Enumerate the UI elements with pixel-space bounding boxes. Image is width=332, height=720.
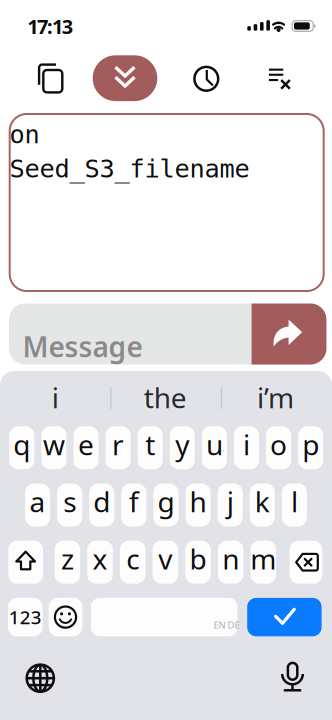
staticText: g: [157, 483, 174, 520]
button[interactable]: 123: [8, 598, 43, 636]
button[interactable]: f: [121, 483, 146, 526]
button[interactable]: z: [55, 541, 80, 584]
button[interactable]: s: [57, 483, 82, 526]
staticText: i: [243, 426, 250, 463]
staticText: x: [93, 540, 108, 577]
staticText: m: [250, 540, 276, 577]
button[interactable]: v: [152, 541, 178, 584]
button[interactable]: r: [106, 426, 131, 469]
button[interactable]: p: [298, 426, 323, 469]
staticText: EN DE: [213, 619, 239, 631]
staticText: r: [112, 426, 124, 463]
staticText: a: [30, 483, 46, 520]
staticText: l: [291, 483, 298, 520]
button[interactable]: [29, 56, 73, 100]
button[interactable]: EN DE: [91, 598, 237, 636]
staticText: n: [222, 540, 239, 577]
button[interactable]: [252, 303, 326, 364]
staticText: k: [255, 483, 270, 520]
button[interactable]: o: [266, 426, 291, 469]
button[interactable]: d: [89, 483, 114, 526]
staticText: the: [144, 379, 187, 416]
staticText: s: [63, 483, 76, 520]
button[interactable]: i: [234, 426, 259, 469]
staticText: z: [61, 540, 74, 577]
button[interactable]: [247, 598, 322, 636]
staticText: 17:13: [27, 13, 73, 40]
button[interactable]: k: [250, 483, 275, 526]
button[interactable]: [18, 656, 62, 700]
button[interactable]: j: [218, 483, 243, 526]
staticText: i’m: [257, 379, 294, 416]
staticText: f: [129, 483, 139, 520]
button[interactable]: g: [153, 483, 178, 526]
button[interactable]: [49, 598, 82, 636]
button[interactable]: i’m: [225, 375, 325, 419]
button[interactable]: [290, 541, 322, 584]
button[interactable]: y: [170, 426, 195, 469]
staticText: t: [145, 426, 155, 463]
staticText: on Seed_S3_filename: [9, 120, 249, 183]
button[interactable]: c: [120, 541, 145, 584]
staticText: d: [93, 483, 110, 520]
button[interactable]: [257, 56, 301, 100]
staticText: b: [189, 540, 206, 577]
staticText: 123: [9, 605, 42, 629]
staticText: v: [158, 540, 172, 577]
button[interactable]: the: [115, 375, 215, 419]
button[interactable]: [270, 655, 314, 699]
button[interactable]: w: [41, 426, 66, 469]
staticText: w: [43, 426, 65, 463]
staticText: j: [227, 483, 234, 520]
button[interactable]: [8, 541, 43, 584]
button[interactable]: [93, 55, 157, 101]
button[interactable]: q: [9, 426, 34, 469]
button[interactable]: m: [250, 541, 276, 584]
button[interactable]: a: [25, 483, 50, 526]
button[interactable]: l: [282, 483, 307, 526]
button[interactable]: [184, 57, 228, 101]
staticText: Message: [22, 328, 142, 365]
button[interactable]: i: [5, 375, 105, 419]
button[interactable]: t: [138, 426, 163, 469]
staticText: e: [78, 426, 94, 463]
staticText: q: [13, 426, 30, 463]
staticText: c: [126, 540, 139, 577]
button[interactable]: x: [87, 541, 113, 584]
staticText: p: [302, 426, 319, 463]
staticText: y: [175, 426, 189, 463]
button[interactable]: b: [185, 541, 211, 584]
button[interactable]: e: [73, 426, 98, 469]
staticText: h: [190, 483, 207, 520]
button[interactable]: n: [218, 541, 243, 584]
button[interactable]: u: [202, 426, 227, 469]
button[interactable]: h: [186, 483, 211, 526]
staticText: o: [270, 426, 287, 463]
staticText: i: [52, 379, 59, 416]
staticText: u: [206, 426, 223, 463]
